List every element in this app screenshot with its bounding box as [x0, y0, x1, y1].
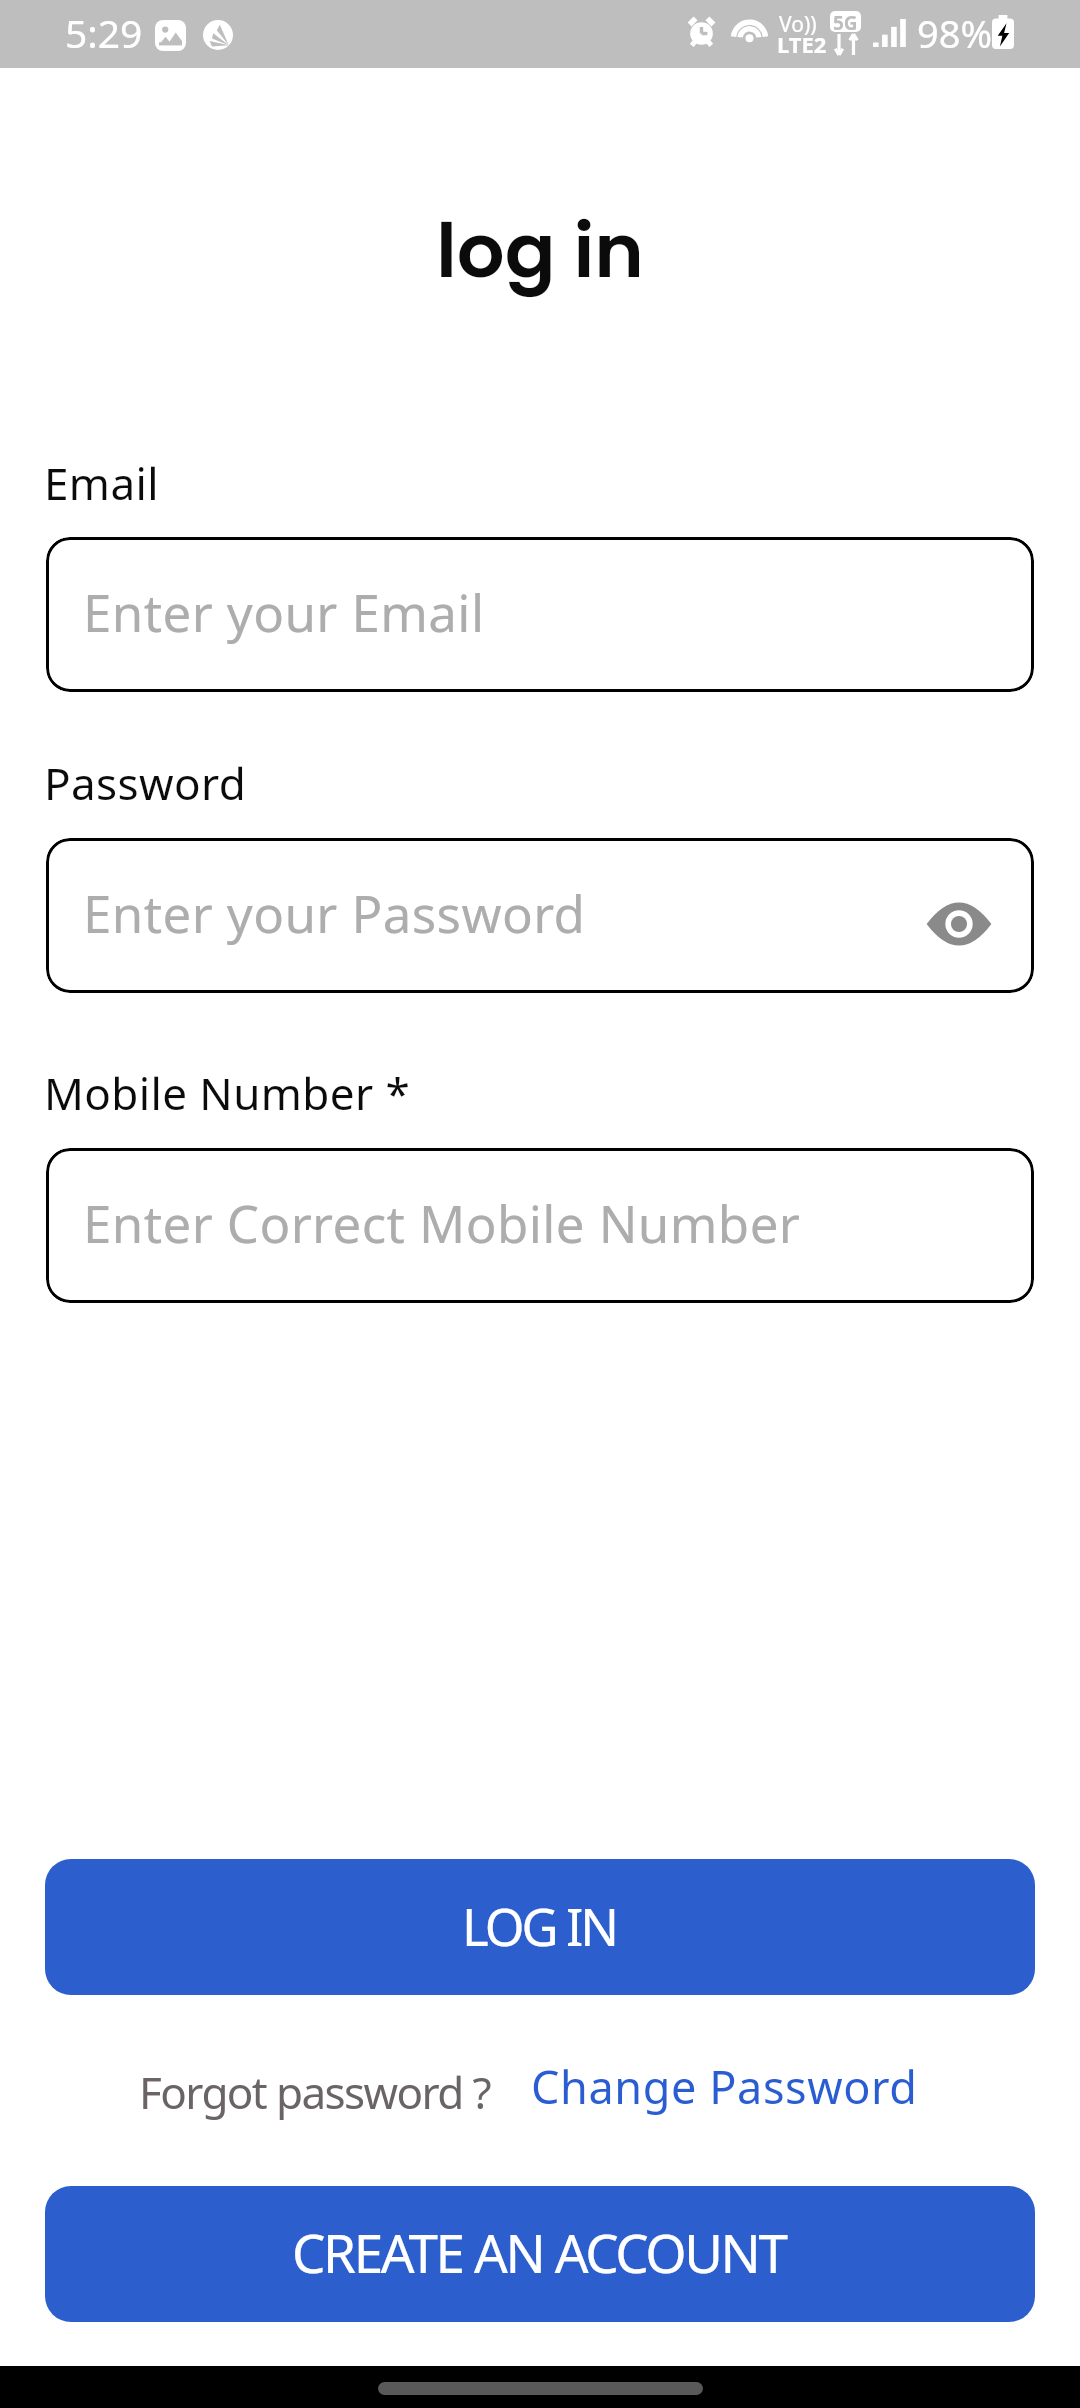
- staticText: Enter your Password: [83, 878, 586, 947]
- staticText: Mobile Number *: [44, 1063, 411, 1123]
- staticText: 5:29: [65, 6, 143, 59]
- button[interactable]: LOG IN: [45, 1859, 1035, 1995]
- staticText: Enter Correct Mobile Number: [83, 1188, 801, 1257]
- staticText: CREATE AN ACCOUNT: [292, 2216, 786, 2288]
- staticText: Change Password: [531, 2056, 918, 2117]
- staticText: LTE2: [777, 29, 827, 59]
- button[interactable]: CREATE AN ACCOUNT: [45, 2186, 1035, 2322]
- staticText: LOG IN: [462, 1891, 616, 1960]
- staticText: 5G: [833, 11, 858, 31]
- button[interactable]: Enter your Email: [46, 537, 1034, 692]
- staticText: 98%: [917, 7, 993, 59]
- button[interactable]: Enter your Password: [46, 838, 1034, 993]
- staticText: Password: [44, 753, 247, 813]
- button[interactable]: Change Password: [528, 2055, 920, 2117]
- staticText: Email: [44, 453, 159, 513]
- staticText: log in: [436, 198, 644, 303]
- staticText: Enter your Email: [83, 577, 485, 646]
- staticText: Vo)): [779, 10, 817, 39]
- staticText: Forgot password ?: [139, 2062, 490, 2122]
- button[interactable]: Enter Correct Mobile Number: [46, 1148, 1034, 1303]
- button[interactable]: Show password: [923, 888, 995, 960]
